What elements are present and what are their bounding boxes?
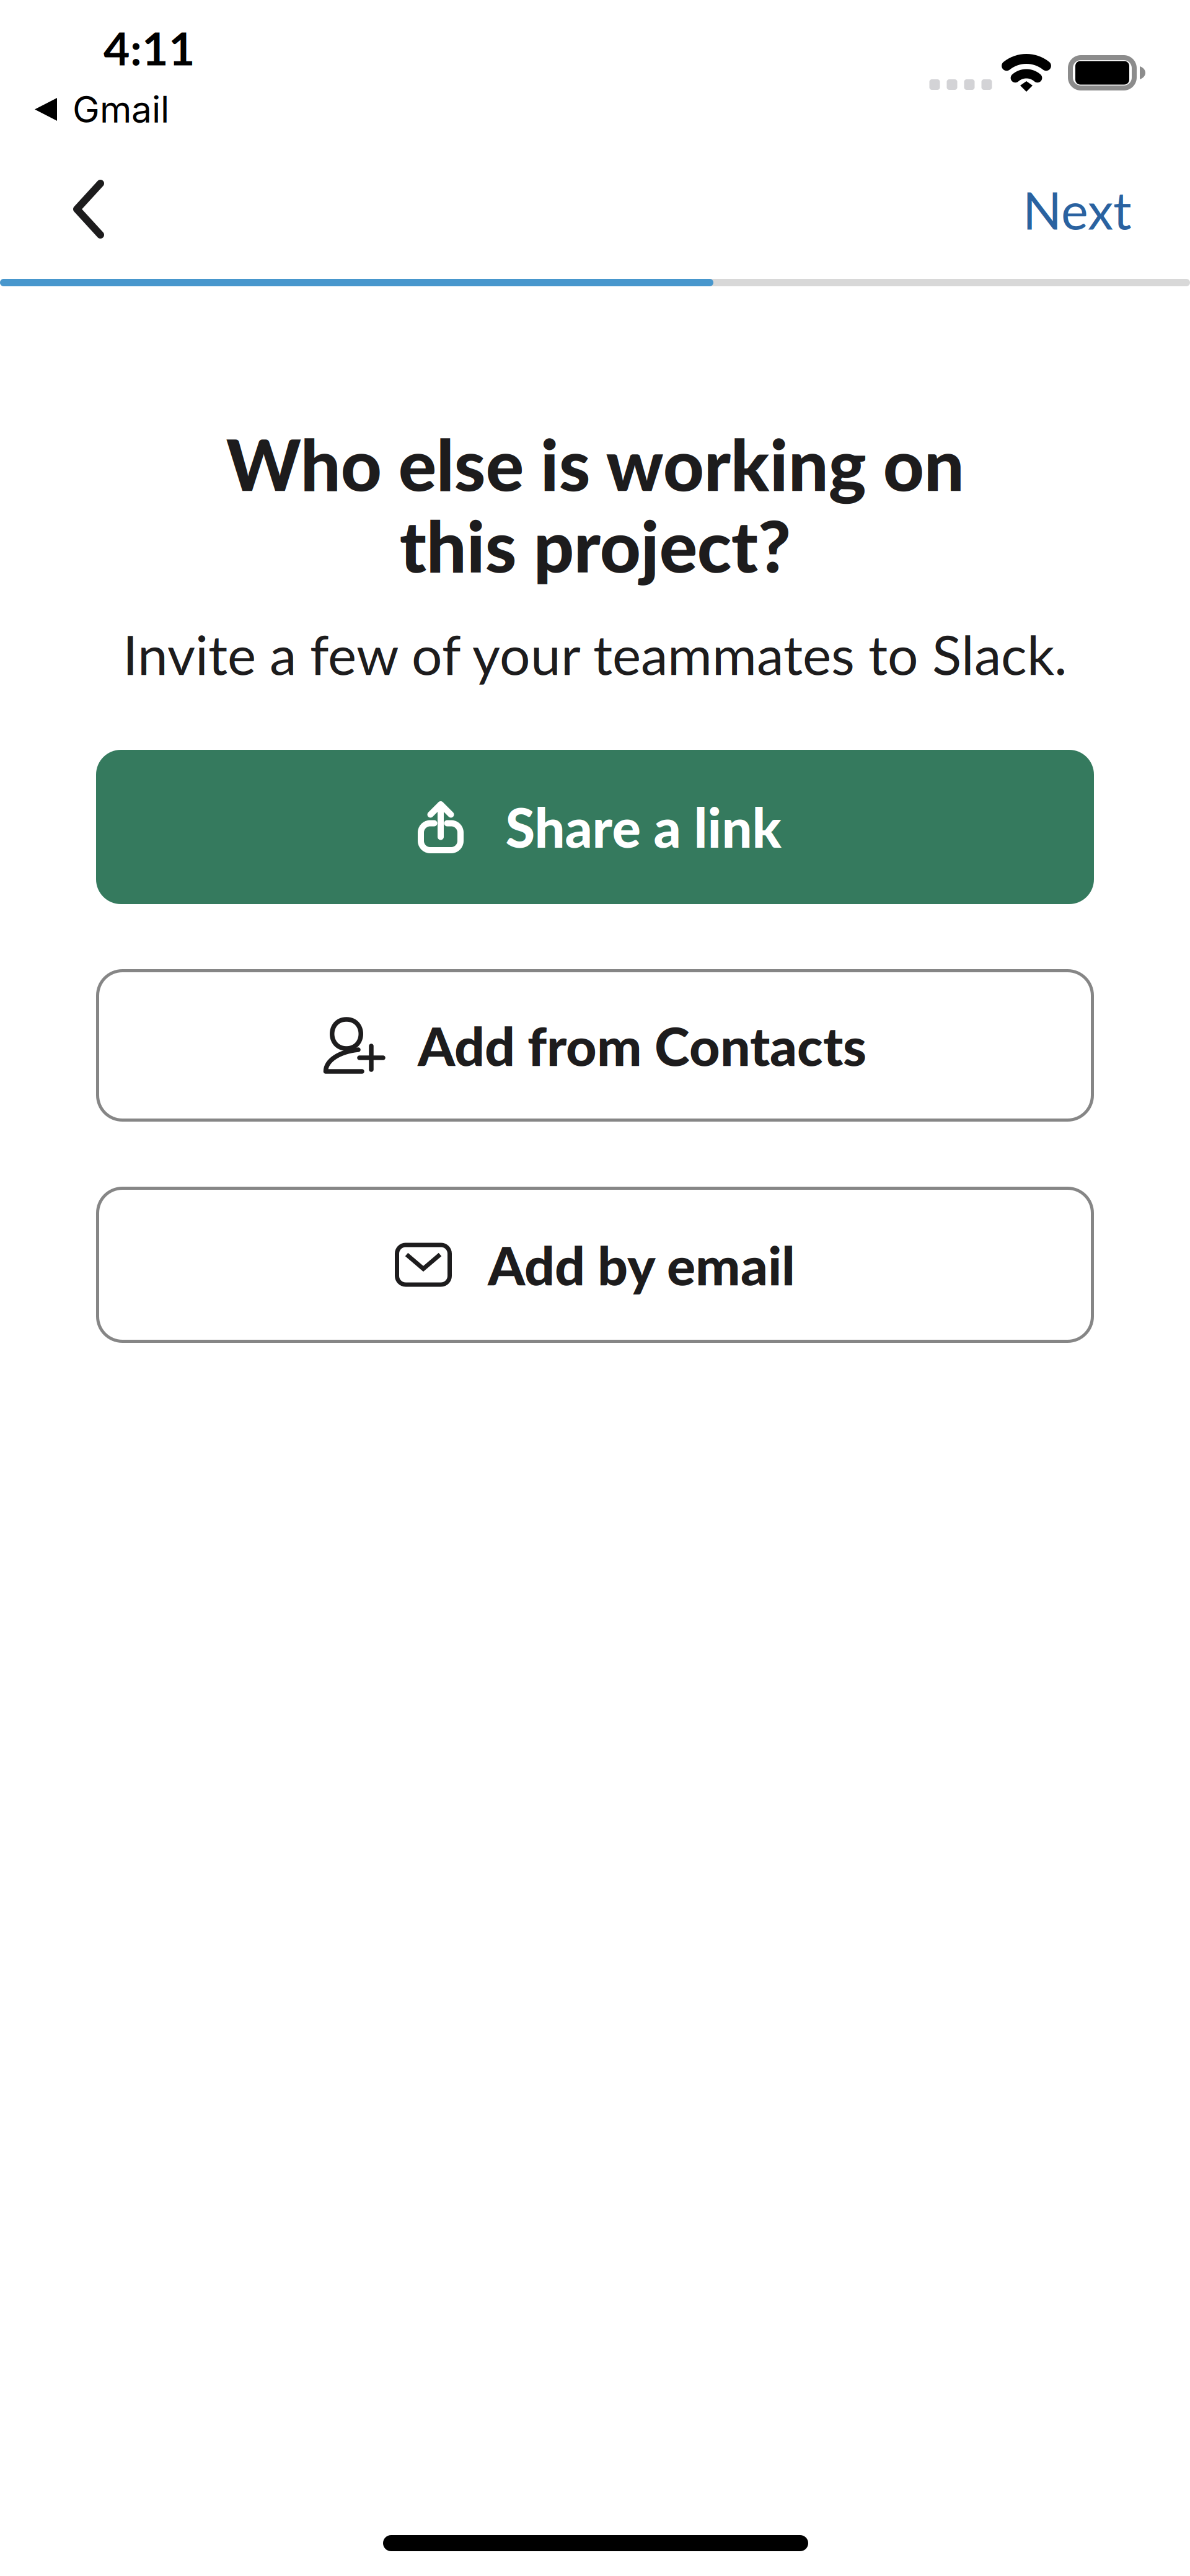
staticText: Gmail: [73, 87, 169, 131]
button[interactable]: Gmail: [35, 87, 169, 131]
staticText: Add by email: [488, 1233, 795, 1297]
button[interactable]: Back: [40, 152, 138, 266]
staticText: Add from Contacts: [418, 1013, 866, 1077]
staticText: Share a link: [505, 795, 781, 859]
staticText: Who else is working on this project?: [226, 421, 964, 588]
staticText: Next: [1023, 179, 1132, 241]
staticText: Invite a few of your teammates to Slack.: [123, 622, 1067, 686]
button[interactable]: Add from Contacts: [96, 969, 1094, 1122]
button[interactable]: Add by email: [96, 1187, 1094, 1343]
button[interactable]: Next: [993, 154, 1161, 265]
button[interactable]: Share a link: [96, 750, 1094, 904]
staticText: 4:11: [104, 20, 195, 75]
